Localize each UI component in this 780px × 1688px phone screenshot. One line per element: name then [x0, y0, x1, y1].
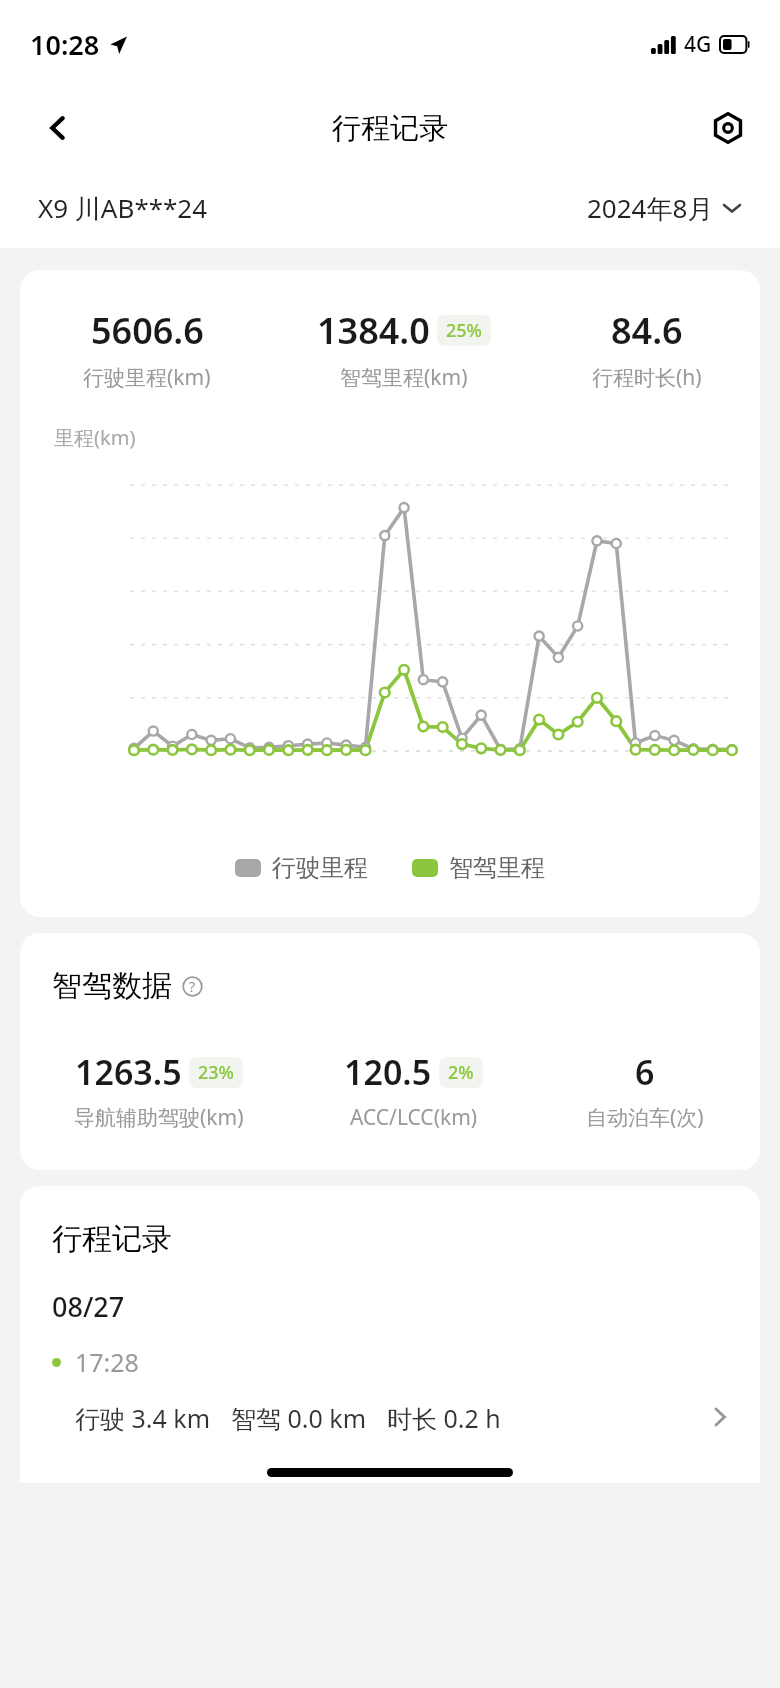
staticText: 行驶里程	[272, 853, 368, 883]
staticText: 行程时长(h)	[592, 363, 702, 392]
staticText: 行程记录	[52, 1220, 172, 1258]
staticText: ?	[189, 977, 196, 996]
staticText: 智驾里程	[449, 853, 545, 883]
staticText: 行驶 3.4 km	[75, 1401, 211, 1435]
staticText: 自动泊车(次)	[586, 1103, 704, 1132]
staticText: 23%	[198, 1060, 234, 1085]
staticText: 4G	[684, 30, 712, 59]
staticText: 08/27	[52, 1288, 125, 1325]
staticText: 1384.0	[317, 306, 430, 355]
staticText: 里程(km)	[54, 424, 136, 451]
staticText: 智驾数据	[52, 967, 172, 1005]
staticText: ACC/LCC(km)	[350, 1103, 478, 1132]
staticText: 行程记录	[332, 110, 448, 147]
button[interactable]: 智驾里程	[412, 853, 545, 883]
staticText: 6	[635, 1049, 655, 1095]
staticText: 时长 0.2 h	[387, 1401, 501, 1435]
staticText: X9 川AB***24	[38, 190, 208, 226]
staticText: 120.5	[344, 1049, 432, 1095]
staticText: 17:28	[75, 1345, 139, 1379]
staticText: 智驾 0.0 km	[231, 1401, 367, 1435]
button[interactable]: Settings	[704, 104, 752, 152]
button[interactable]: Back	[34, 104, 82, 152]
staticText: 25%	[446, 318, 482, 343]
staticText: 1263.5	[75, 1049, 182, 1095]
staticText: 行驶里程(km)	[83, 363, 211, 392]
staticText: 10:28	[30, 26, 100, 63]
staticText: 84.6	[611, 306, 683, 355]
button[interactable]: 2024年8月	[587, 190, 742, 226]
staticText: 2024年8月	[587, 190, 714, 226]
button[interactable]: 17:28	[20, 1345, 760, 1435]
button[interactable]: Info	[178, 972, 206, 1000]
button[interactable]: 行驶里程	[235, 853, 368, 883]
staticText: 5606.6	[91, 306, 204, 355]
staticText: 导航辅助驾驶(km)	[74, 1103, 244, 1132]
staticText: 智驾里程(km)	[340, 363, 468, 392]
staticText: 2%	[448, 1060, 474, 1085]
